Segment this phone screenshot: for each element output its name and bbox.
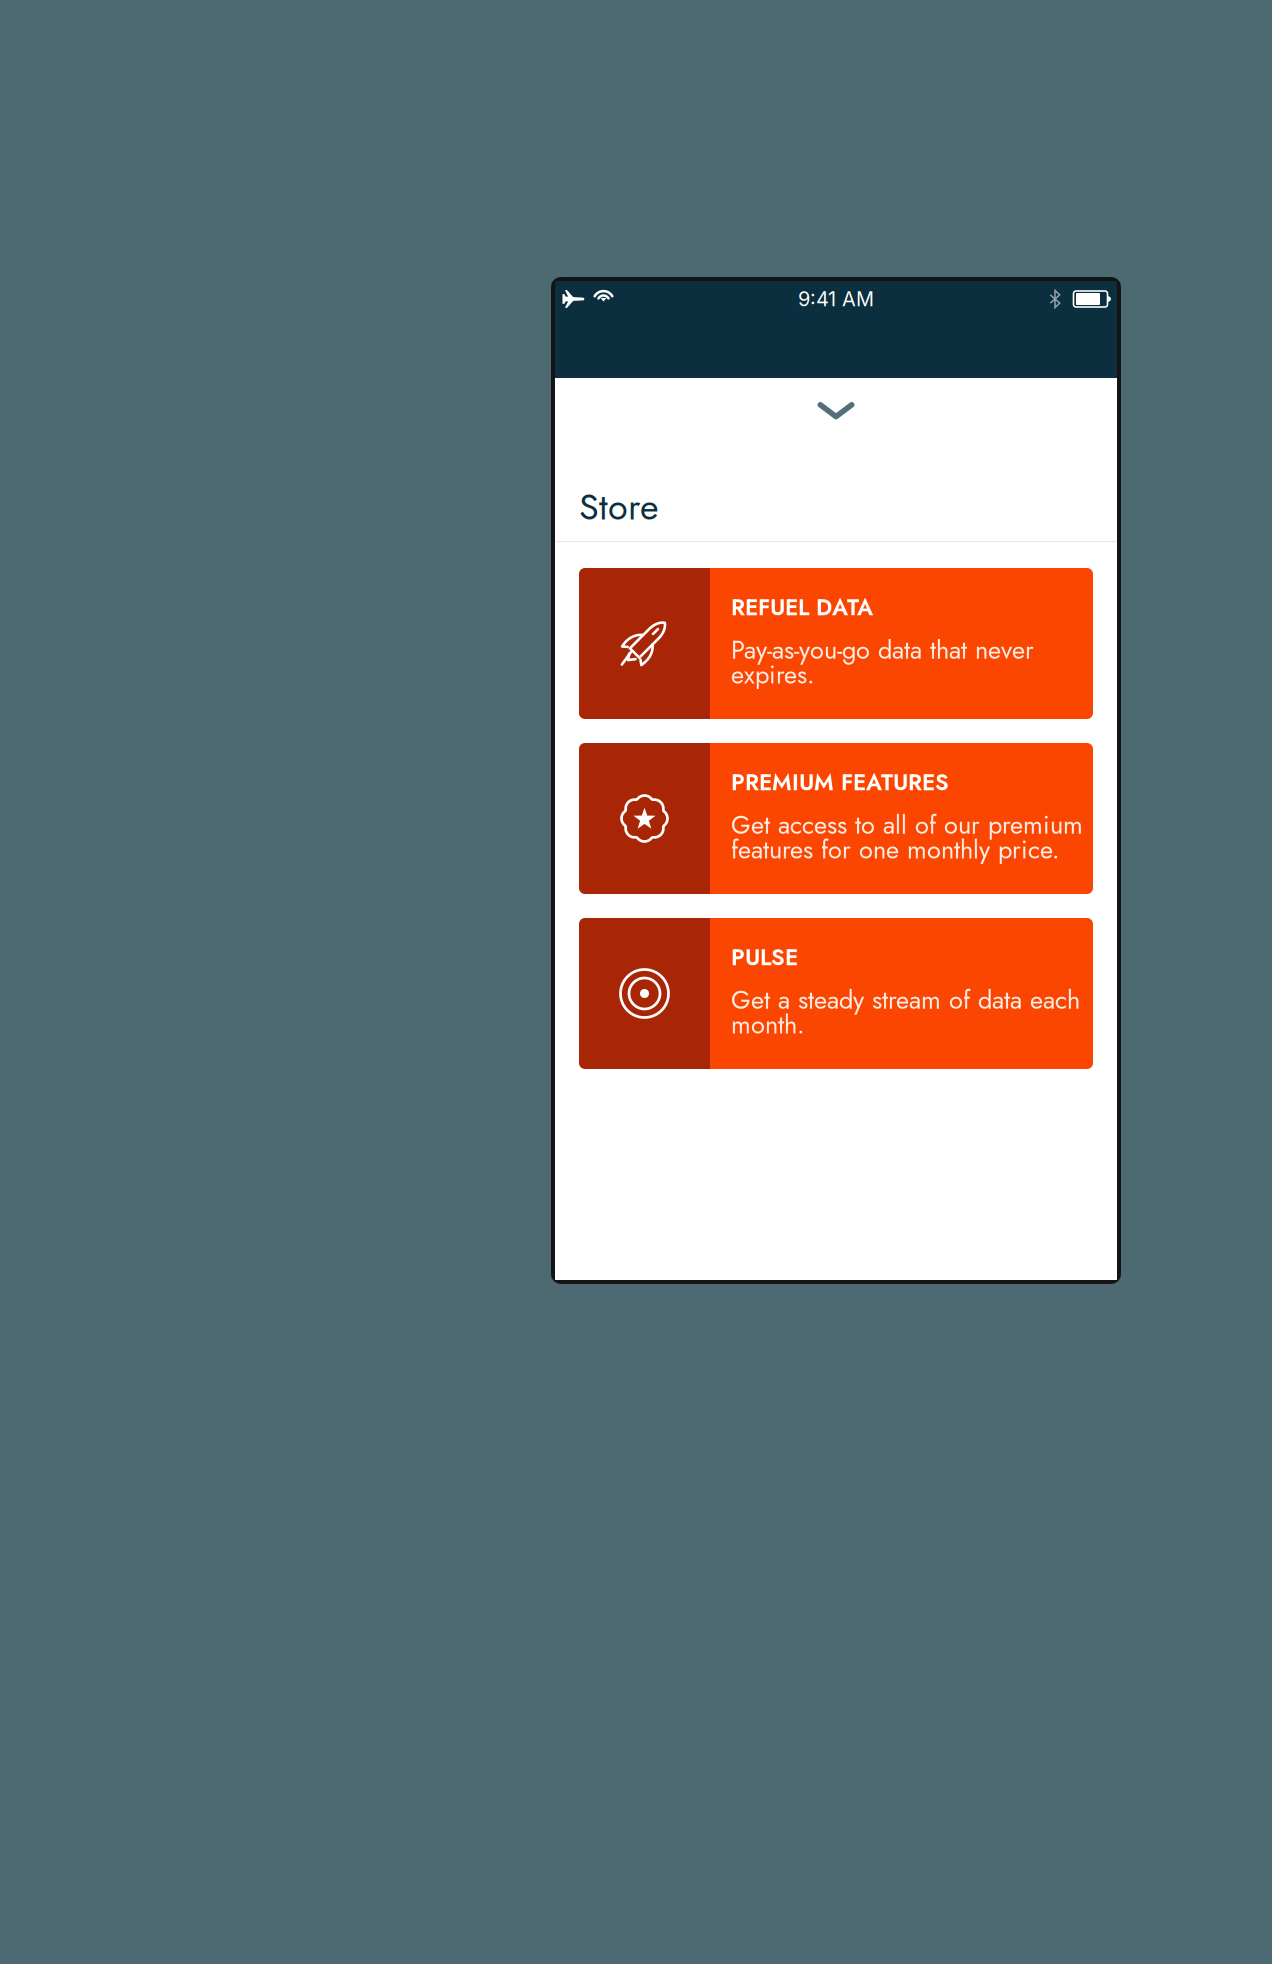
button[interactable]: Dismiss [555,378,1117,438]
staticText: PREMIUM FEATURES [731,766,949,799]
button[interactable]: PULSE [579,918,1093,1069]
button[interactable]: REFUEL DATA [579,568,1093,719]
button[interactable]: PREMIUM FEATURES [579,743,1093,894]
staticText: Pay-as-you-go data that never expires. [731,632,1034,693]
staticText: REFUEL DATA [731,591,873,624]
staticText: PULSE [731,941,798,974]
staticText: Store [579,481,659,533]
staticText: Get access to all of our premium feature… [731,807,1083,868]
staticText: 9:41 AM [798,287,874,311]
staticText: Get a steady stream of data each month. [731,982,1080,1043]
